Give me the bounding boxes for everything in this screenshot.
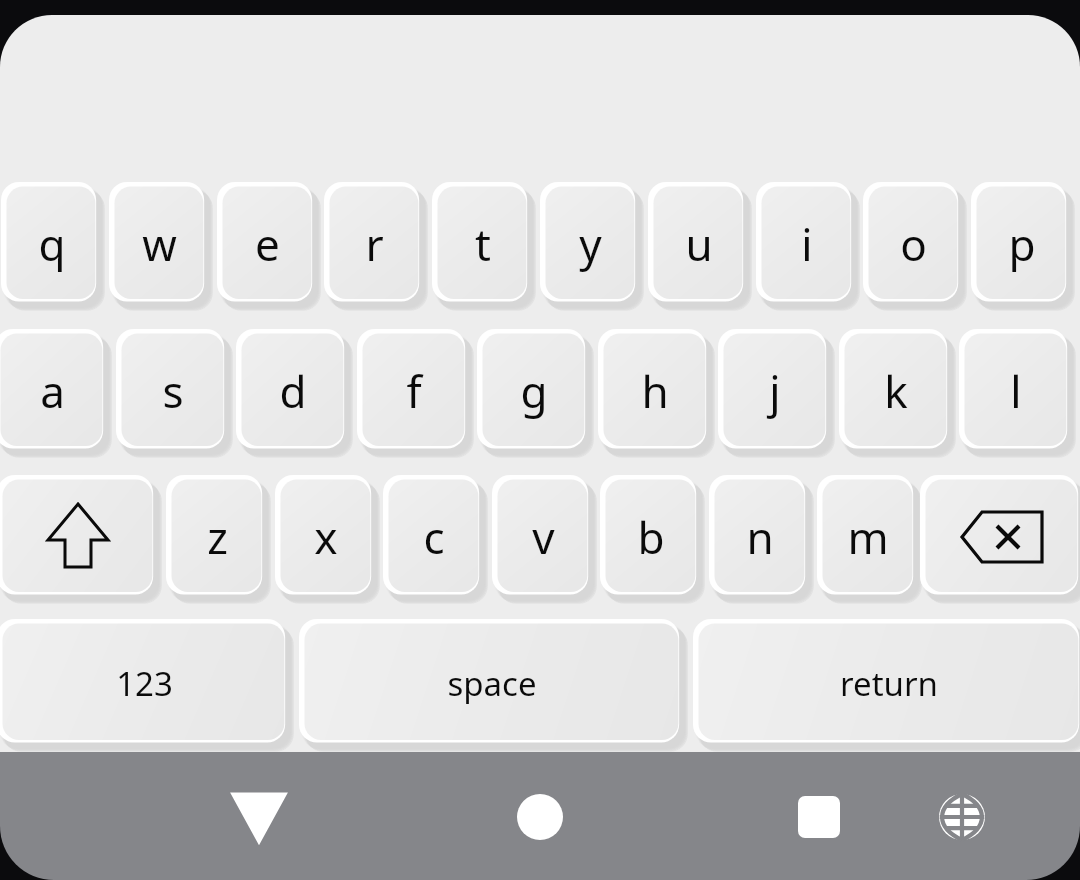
- button[interactable]: d: [237, 330, 349, 452]
- button[interactable]: Recent apps: [774, 772, 864, 862]
- button[interactable]: g: [478, 330, 590, 452]
- button[interactable]: a: [0, 330, 108, 452]
- button[interactable]: i: [757, 183, 856, 305]
- staticText: w: [142, 214, 177, 274]
- button[interactable]: u: [649, 183, 748, 305]
- staticText: e: [255, 214, 280, 274]
- button[interactable]: y: [541, 183, 640, 305]
- staticText: y: [579, 214, 602, 274]
- staticText: k: [884, 361, 908, 421]
- staticText: r: [365, 214, 384, 274]
- staticText: return: [840, 661, 938, 706]
- staticText: l: [1010, 361, 1022, 421]
- button[interactable]: s: [117, 330, 229, 452]
- button[interactable]: r: [325, 183, 424, 305]
- button[interactable]: p: [972, 183, 1071, 305]
- staticText: g: [520, 361, 548, 421]
- button[interactable]: e: [218, 183, 317, 305]
- button[interactable]: Home: [495, 772, 585, 862]
- staticText: q: [38, 214, 66, 274]
- staticText: c: [423, 507, 445, 567]
- staticText: d: [279, 361, 307, 421]
- button[interactable]: Shift: [0, 476, 158, 598]
- button[interactable]: return: [694, 620, 1080, 746]
- button[interactable]: Switch input language: [917, 772, 1007, 862]
- staticText: u: [685, 214, 713, 274]
- button[interactable]: l: [960, 330, 1072, 452]
- button[interactable]: f: [358, 330, 470, 452]
- button[interactable]: t: [433, 183, 532, 305]
- button[interactable]: 123: [0, 620, 290, 746]
- button[interactable]: q: [2, 183, 101, 305]
- button[interactable]: v: [493, 476, 593, 598]
- button[interactable]: m: [818, 476, 918, 598]
- staticText: z: [207, 507, 228, 567]
- staticText: o: [900, 214, 927, 274]
- button[interactable]: h: [599, 330, 711, 452]
- button[interactable]: z: [167, 476, 267, 598]
- staticText: m: [847, 507, 889, 567]
- staticText: space: [447, 661, 537, 706]
- staticText: t: [475, 214, 491, 274]
- button[interactable]: Backspace: [921, 476, 1080, 598]
- staticText: x: [314, 507, 338, 567]
- staticText: n: [746, 507, 774, 567]
- staticText: b: [637, 507, 665, 567]
- button[interactable]: k: [840, 330, 952, 452]
- staticText: h: [641, 361, 669, 421]
- button[interactable]: Hide keyboard: [214, 772, 304, 862]
- button[interactable]: space: [300, 620, 684, 746]
- button[interactable]: w: [110, 183, 209, 305]
- staticText: s: [162, 361, 184, 421]
- staticText: v: [532, 507, 555, 567]
- button[interactable]: o: [864, 183, 963, 305]
- button[interactable]: b: [601, 476, 701, 598]
- staticText: 123: [116, 661, 173, 706]
- button[interactable]: n: [710, 476, 810, 598]
- staticText: j: [769, 361, 781, 421]
- staticText: p: [1008, 214, 1036, 274]
- button[interactable]: x: [276, 476, 376, 598]
- button[interactable]: j: [719, 330, 831, 452]
- staticText: f: [406, 361, 422, 421]
- button[interactable]: c: [384, 476, 484, 598]
- staticText: a: [40, 361, 65, 421]
- staticText: i: [801, 214, 813, 274]
